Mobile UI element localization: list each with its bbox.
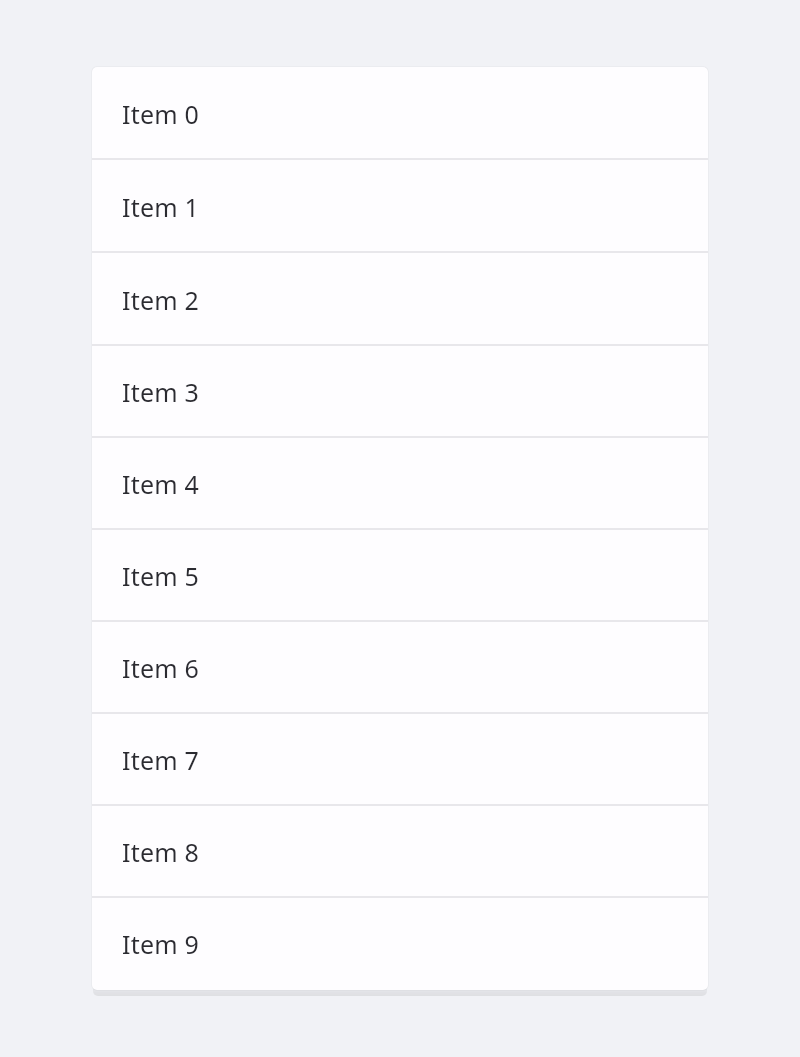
- staticText: Item 4: [122, 467, 199, 501]
- staticText: Item 3: [122, 375, 199, 409]
- staticText: Item 7: [122, 743, 199, 777]
- button[interactable]: Item 1: [92, 160, 708, 253]
- button[interactable]: Item 3: [92, 346, 708, 438]
- staticText: Item 8: [122, 835, 199, 869]
- button[interactable]: Item 5: [92, 530, 708, 622]
- button[interactable]: Item 9: [92, 898, 708, 990]
- staticText: Item 0: [122, 97, 199, 131]
- staticText: Item 9: [122, 927, 199, 961]
- button[interactable]: Item 4: [92, 438, 708, 530]
- staticText: Item 2: [122, 283, 199, 317]
- button[interactable]: Item 0: [92, 67, 708, 160]
- button[interactable]: Item 6: [92, 622, 708, 714]
- staticText: Item 5: [122, 559, 199, 593]
- staticText: Item 1: [122, 190, 199, 224]
- button[interactable]: Item 7: [92, 714, 708, 806]
- button[interactable]: Item 2: [92, 253, 708, 346]
- button[interactable]: Item 8: [92, 806, 708, 898]
- staticText: Item 6: [122, 651, 199, 685]
